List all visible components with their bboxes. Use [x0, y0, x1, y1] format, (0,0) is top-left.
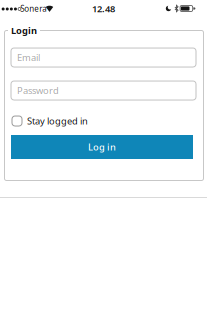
- button[interactable]: Stay logged in: [12, 115, 202, 127]
- staticText: Stay logged in: [27, 115, 88, 127]
- button[interactable]: Email: [11, 48, 196, 67]
- button[interactable]: Log in: [11, 135, 193, 159]
- button[interactable]: Password: [11, 81, 196, 100]
- staticText: Sonera: [20, 3, 46, 14]
- staticText: Password: [17, 84, 59, 97]
- staticText: Log in: [88, 141, 116, 153]
- staticText: 12.48: [92, 2, 115, 15]
- staticText: Email: [17, 51, 40, 64]
- staticText: Login: [11, 24, 37, 37]
